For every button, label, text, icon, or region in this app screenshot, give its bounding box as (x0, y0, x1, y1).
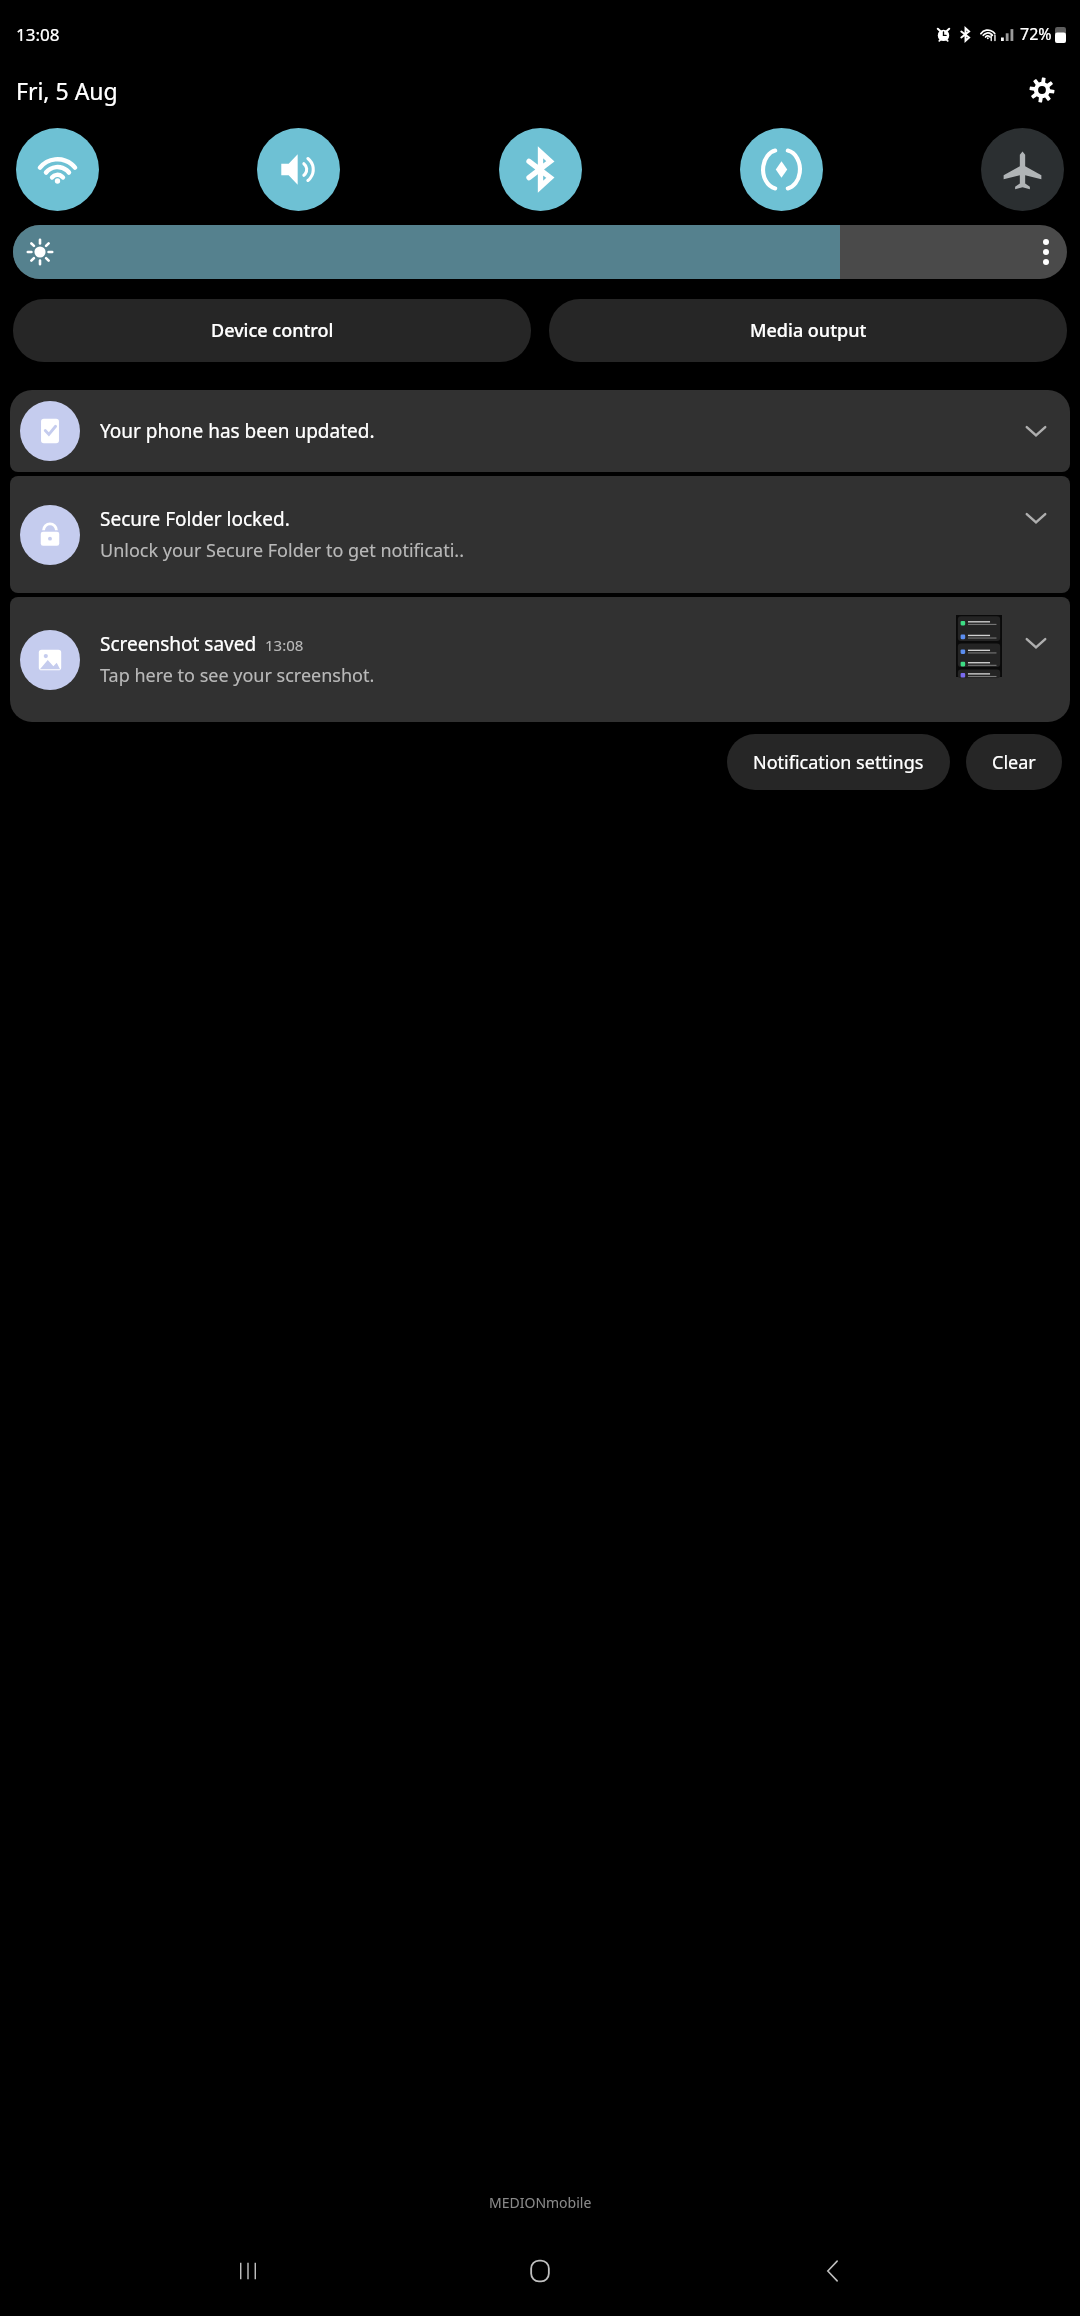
button[interactable]: Secure Folder locked. (10, 476, 1070, 593)
button[interactable]: Expand (1012, 494, 1060, 542)
button[interactable]: Sound (257, 128, 340, 211)
staticText: Tap here to see your screenshot. (100, 663, 375, 688)
staticText: 13:08 (265, 635, 304, 655)
button[interactable]: Expand (1012, 407, 1060, 455)
button[interactable]: Screenshot saved (10, 597, 1070, 722)
staticText: MEDIONmobile (489, 2193, 592, 2212)
button[interactable]: Settings (1020, 68, 1064, 112)
button[interactable]: Airplane mode (981, 128, 1064, 211)
staticText: Notification settings (753, 750, 924, 775)
button[interactable]: Home (495, 2226, 585, 2316)
button[interactable]: Auto rotate (740, 128, 823, 211)
button[interactable]: Recents (203, 2226, 293, 2316)
button[interactable]: Device control (13, 299, 531, 362)
button[interactable]: Your phone has been updated. (10, 390, 1070, 472)
staticText: Device control (211, 318, 334, 343)
button[interactable]: Notification settings (727, 734, 950, 790)
staticText: Your phone has been updated. (100, 418, 1012, 444)
button[interactable]: Brightness (13, 225, 1067, 279)
button[interactable]: Clear (966, 734, 1062, 790)
button[interactable]: Back (788, 2226, 878, 2316)
button[interactable]: Wi-Fi (16, 128, 99, 211)
staticText: Screenshot saved (100, 631, 257, 657)
staticText: Media output (750, 318, 867, 343)
staticText: Clear (992, 750, 1036, 775)
staticText: Secure Folder locked. (100, 506, 290, 532)
staticText: 13:08 (16, 23, 60, 46)
button[interactable]: Expand (1012, 619, 1060, 667)
staticText: Fri, 5 Aug (16, 75, 118, 106)
staticText: Unlock your Secure Folder to get notific… (100, 538, 464, 563)
staticText: 72% (1020, 23, 1052, 45)
button[interactable]: Media output (549, 299, 1067, 362)
button[interactable]: Bluetooth (499, 128, 582, 211)
